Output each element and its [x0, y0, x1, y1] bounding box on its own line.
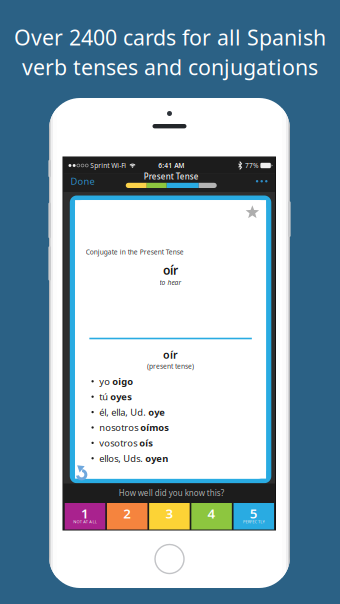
staticText: (present tense) [147, 362, 194, 371]
staticText: PERFECTLY [243, 519, 264, 524]
staticText: tú [99, 390, 110, 403]
staticText: oír [163, 348, 178, 362]
staticText: Over 2400 cards for all Spanish [14, 23, 326, 51]
staticText: 3 [165, 504, 173, 522]
staticText: oímos [140, 421, 169, 434]
staticText: 4 [208, 504, 216, 522]
staticText: ellos, Uds. [99, 452, 145, 464]
staticText: 1 [81, 504, 89, 522]
staticText: oyes [110, 390, 132, 403]
button[interactable]: More options [252, 175, 271, 187]
staticText: oís [139, 437, 153, 449]
staticText: Conjugate in the Present Tense [86, 248, 184, 256]
staticText: él, ella, Ud. [99, 406, 148, 418]
staticText: Done [70, 175, 94, 187]
staticText: How well did you know this? [119, 488, 224, 498]
staticText: to hear [160, 278, 182, 287]
staticText: vosotros [99, 437, 139, 449]
button[interactable]: Flip card back [74, 462, 90, 482]
staticText: 2 [123, 504, 131, 522]
staticText: 6:41 AM [158, 161, 184, 170]
staticText: yo [99, 375, 112, 387]
staticText: oye [148, 406, 165, 418]
staticText: Present Tense [144, 171, 199, 182]
button[interactable]: 1 [65, 503, 105, 529]
staticText: NOT AT ALL [73, 519, 97, 524]
staticText: oír [163, 262, 178, 278]
button[interactable]: 3 [149, 503, 190, 529]
button[interactable]: 4 [191, 503, 232, 529]
staticText: 5 [250, 504, 258, 522]
staticText: nosotros [99, 421, 140, 434]
staticText: 77% [245, 161, 259, 170]
button[interactable]: 2 [107, 503, 147, 529]
staticText: oyen [145, 452, 168, 464]
staticText: Sprint Wi-Fi [88, 161, 126, 170]
button[interactable]: 5 [234, 503, 274, 529]
staticText: oigo [112, 375, 133, 387]
button[interactable]: Done [67, 172, 97, 190]
staticText: verb tenses and conjugations [22, 53, 318, 81]
button[interactable]: Star this card [241, 201, 263, 223]
